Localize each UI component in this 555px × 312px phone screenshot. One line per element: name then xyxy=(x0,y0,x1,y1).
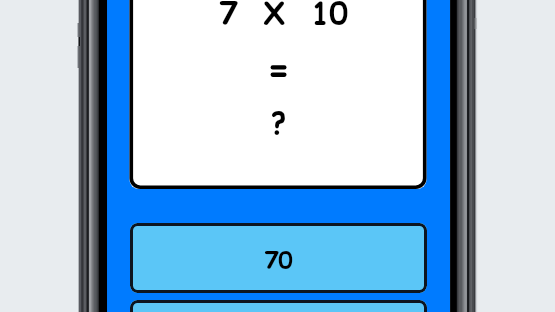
staticText: ? xyxy=(270,102,287,144)
staticText: 70 xyxy=(264,244,293,276)
button[interactable]: Volume xyxy=(74,20,82,70)
button[interactable]: 70 xyxy=(130,223,427,293)
button[interactable]: 63 xyxy=(130,300,427,312)
button[interactable]: Power xyxy=(472,15,480,33)
staticText: 7 X 10 xyxy=(219,0,348,34)
